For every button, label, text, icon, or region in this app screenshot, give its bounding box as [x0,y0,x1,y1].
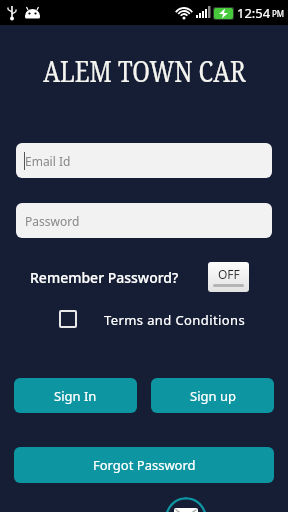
staticText: Email Id [25,153,71,169]
staticText: Sign In [54,387,97,405]
staticText: 12:54 [237,4,271,22]
staticText: OFF [218,266,240,282]
button[interactable]: Sign In [14,378,137,413]
button[interactable]: Forgot Password [14,447,274,483]
staticText: Remember Password? [30,268,179,287]
staticText: PM [272,8,285,19]
button[interactable]: Sign up [151,378,274,413]
button[interactable]: Password [16,203,272,238]
button[interactable]: Email Id [16,143,272,178]
button[interactable]: OFF [208,262,249,292]
button[interactable]: Terms and Conditions [60,311,246,327]
staticText: Sign up [190,387,236,405]
staticText: Forgot Password [93,456,196,474]
button[interactable] [165,497,207,512]
staticText: ALEM TOWN CAR [43,51,246,90]
staticText: Terms and Conditions [104,311,246,327]
staticText: Password [25,213,80,229]
